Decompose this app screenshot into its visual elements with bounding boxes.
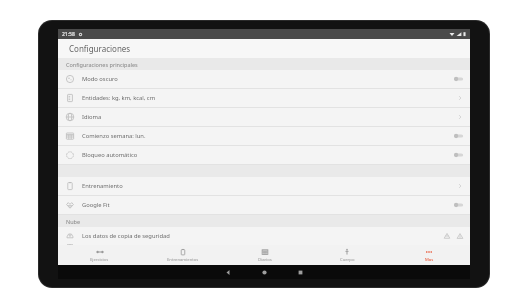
staticText: Ejercicios xyxy=(90,257,109,263)
staticText: Diarios xyxy=(258,257,272,263)
staticText: Google Fit xyxy=(82,201,110,209)
button[interactable]: Los datos de copia de seguridad xyxy=(58,227,470,245)
staticText: Nube xyxy=(66,218,81,225)
staticText: Entrenamientos xyxy=(167,257,199,263)
staticText: Configuraciones xyxy=(69,43,131,54)
button[interactable]: Ejercicios xyxy=(58,245,141,265)
button[interactable]: Idioma xyxy=(58,108,470,127)
button[interactable]: Modo oscuro xyxy=(58,70,470,89)
staticText: Entidades: kg, km, kcal, cm xyxy=(82,94,156,102)
button[interactable]: Back xyxy=(219,265,237,279)
button[interactable]: Google Fit xyxy=(58,196,470,215)
button[interactable]: Entrenamiento xyxy=(58,177,470,196)
button[interactable]: Mas xyxy=(388,245,470,265)
button[interactable]: Entidades: kg, km, kcal, cm xyxy=(58,89,470,108)
staticText: Bloqueo automático xyxy=(82,151,138,159)
button[interactable]: Entrenamientos xyxy=(141,245,224,265)
button[interactable]: Comienzo semana: lun. xyxy=(58,127,470,146)
button[interactable]: Recents xyxy=(291,265,309,279)
staticText: Comienzo semana: lun. xyxy=(82,132,146,140)
staticText: 21:58 xyxy=(62,31,75,38)
staticText: Configuraciones principales xyxy=(66,61,138,68)
staticText: Mas xyxy=(425,257,434,263)
staticText: Los datos de copia de seguridad xyxy=(82,232,170,240)
staticText: Entrenamiento xyxy=(82,182,123,190)
staticText: Modo oscuro xyxy=(82,75,118,83)
staticText: Idioma xyxy=(82,113,102,121)
button[interactable]: Home xyxy=(255,265,273,279)
staticText: Cuerpo xyxy=(340,257,355,263)
button[interactable]: Cuerpo xyxy=(306,245,388,265)
button[interactable]: Diarios xyxy=(224,245,306,265)
button[interactable]: Bloqueo automático xyxy=(58,146,470,165)
